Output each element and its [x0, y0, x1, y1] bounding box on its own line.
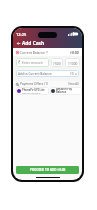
- staticText: Add to Current Balance: [18, 72, 52, 76]
- staticText: Amazon Pay Balance: [56, 87, 81, 94]
- button[interactable]: ₹500: [51, 58, 63, 67]
- staticText: Enter amount: [22, 61, 43, 65]
- staticText: ₹500: [53, 61, 61, 65]
- staticText: Payment Offers (1): [20, 82, 48, 86]
- staticText: ₹0: [70, 72, 74, 76]
- button[interactable]: PROCEED TO ADD ₹0.00: [16, 166, 79, 174]
- button[interactable]: ₹: [16, 58, 49, 67]
- staticText: Add Cash: [22, 40, 45, 47]
- staticText: Current Balance: [20, 50, 45, 54]
- button[interactable]: ₹1000: [65, 58, 80, 67]
- staticText: 12:25: [16, 32, 27, 37]
- button[interactable]: Current Balance: [13, 48, 82, 56]
- staticText: ₹1000: [68, 61, 78, 65]
- button[interactable]: PhonePe UPI Lite: [16, 87, 49, 95]
- staticText: Get 5% Cashback: [22, 92, 41, 95]
- staticText: PhonePe UPI Lite: [22, 88, 45, 92]
- staticText: View All: [68, 82, 79, 86]
- staticText: ₹: [18, 60, 21, 65]
- staticText: ₹0.00: [70, 50, 79, 55]
- button[interactable]: Amazon Pay Balance: [50, 87, 82, 95]
- button[interactable]: Add to Current Balance: [16, 70, 79, 77]
- button[interactable]: Back: [15, 40, 21, 46]
- staticText: PROCEED TO ADD ₹0.00: [30, 168, 66, 172]
